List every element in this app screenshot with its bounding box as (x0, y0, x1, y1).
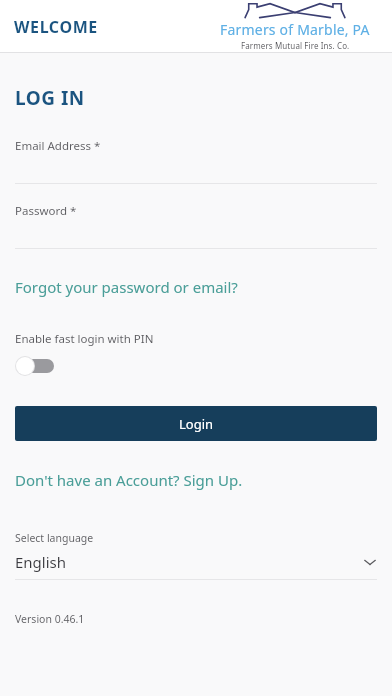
button[interactable]: Don't have an Account? Sign Up. (15, 468, 243, 492)
staticText: English (15, 552, 363, 572)
button[interactable]: Forgot your password or email? (15, 275, 238, 299)
staticText: Farmers Mutual Fire Ins. Co. (241, 40, 350, 51)
button[interactable]: Enable fast login with PIN toggle, off (15, 355, 59, 377)
button[interactable]: Login (15, 406, 377, 441)
other: Open language list (363, 555, 377, 569)
staticText: Password * (15, 203, 77, 219)
staticText: Login (179, 415, 214, 433)
button[interactable]: Farmers of Marble, PA logo (220, 2, 370, 51)
button[interactable]: Password * (15, 203, 377, 249)
button[interactable]: Select language (15, 531, 377, 580)
staticText: Email Address * (15, 138, 101, 154)
staticText: Forgot your password or email? (15, 277, 238, 297)
staticText: LOG IN (15, 85, 85, 111)
staticText: WELCOME (14, 16, 98, 38)
staticText: Select language (15, 531, 94, 545)
button[interactable]: Email Address * (15, 138, 377, 184)
staticText: Version 0.46.1 (15, 612, 85, 626)
staticText: Don't have an Account? Sign Up. (15, 470, 243, 490)
staticText: Farmers of Marble, PA (220, 20, 370, 39)
staticText: Enable fast login with PIN (15, 331, 154, 347)
